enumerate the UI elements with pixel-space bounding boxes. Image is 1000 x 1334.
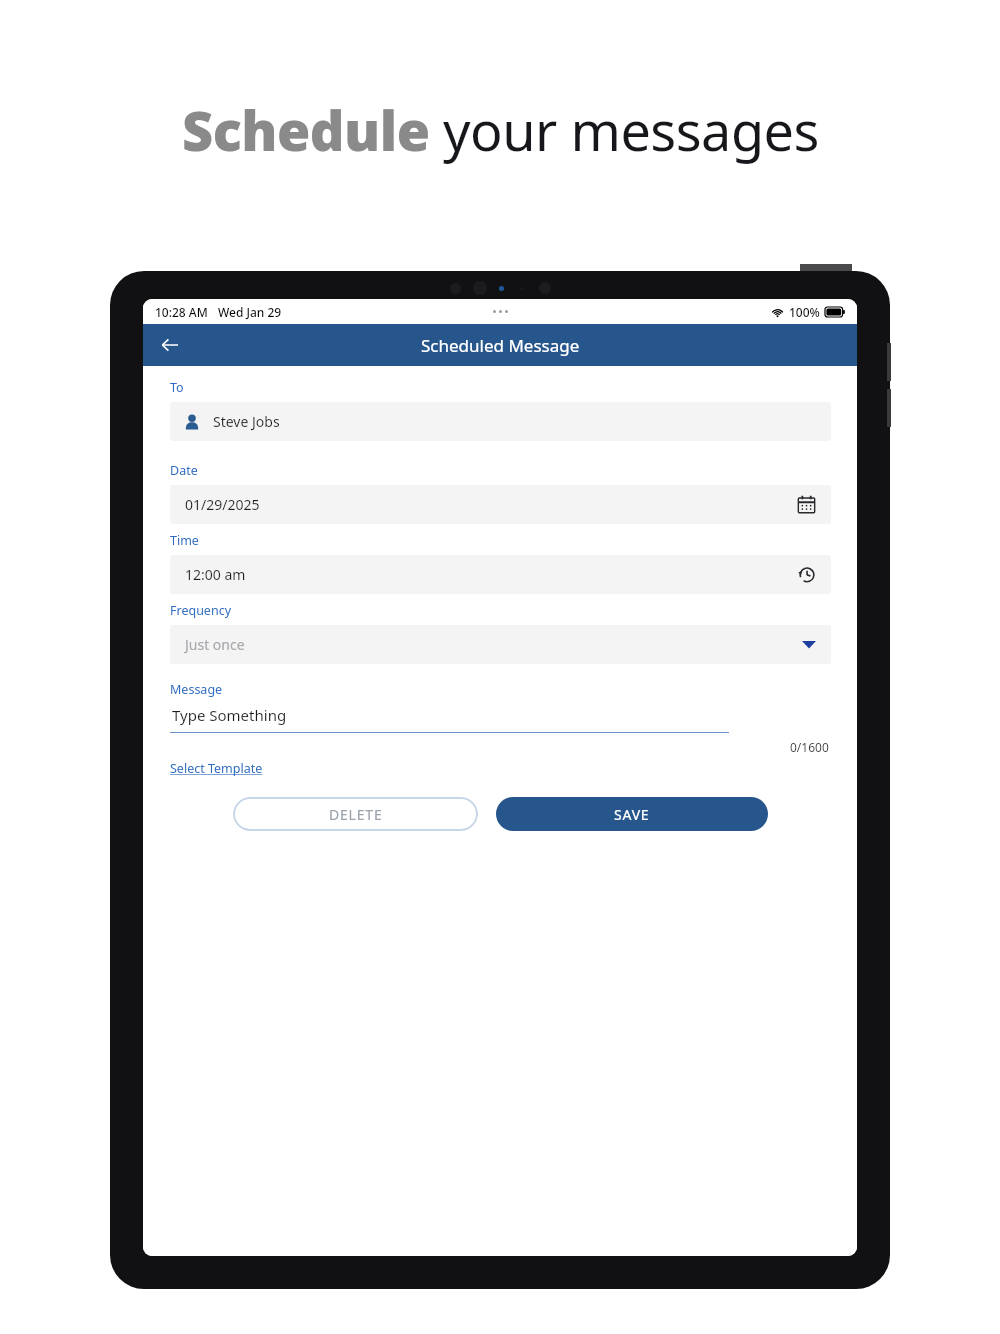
- staticText: Steve Jobs: [213, 412, 280, 431]
- staticText: Select Template: [170, 760, 269, 777]
- button[interactable]: 01/29/2025: [170, 485, 831, 524]
- other: Open frequency list: [802, 640, 816, 649]
- staticText: Type Something: [172, 705, 287, 725]
- other: Contact: [184, 414, 200, 430]
- staticText: 0/1600: [790, 739, 829, 755]
- other: Pick date: [797, 495, 816, 514]
- staticText: 10:28 AM: [155, 304, 208, 320]
- staticText: 12:00 am: [185, 565, 246, 584]
- button[interactable]: Just once: [170, 625, 831, 664]
- staticText: To: [170, 379, 184, 396]
- staticText: Time: [170, 532, 199, 549]
- staticText: SAVE: [614, 805, 650, 824]
- staticText: Date: [170, 462, 198, 479]
- staticText: DELETE: [329, 805, 383, 824]
- button[interactable]: Back: [151, 326, 189, 364]
- staticText: Schedule: [182, 93, 430, 167]
- button[interactable]: Select Template: [170, 760, 269, 777]
- button[interactable]: DELETE: [233, 797, 478, 831]
- staticText: Just once: [185, 635, 245, 654]
- button[interactable]: SAVE: [496, 797, 768, 831]
- button[interactable]: Contact: [170, 402, 831, 441]
- other: Pick time: [797, 565, 816, 584]
- button[interactable]: Type Something: [170, 701, 729, 733]
- staticText: Frequency: [170, 602, 232, 619]
- staticText: 01/29/2025: [185, 495, 260, 514]
- button[interactable]: 12:00 am: [170, 555, 831, 594]
- staticText: Wed Jan 29: [218, 304, 282, 320]
- staticText: Message: [170, 681, 223, 698]
- staticText: 100%: [789, 304, 820, 320]
- staticText: Scheduled Message: [421, 334, 580, 357]
- staticText: your messages: [443, 93, 819, 167]
